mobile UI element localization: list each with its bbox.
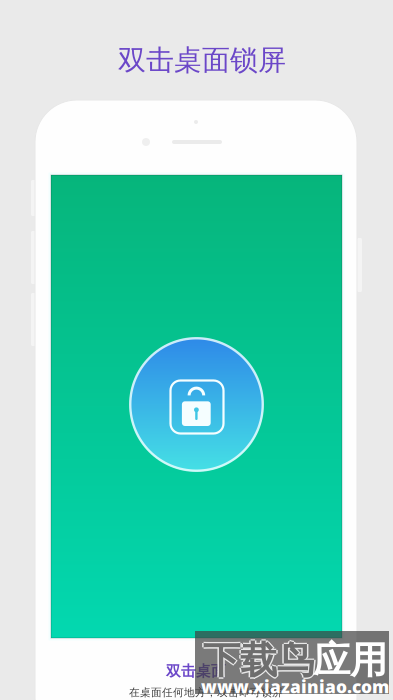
staticText: 应用 [313,637,387,683]
staticText: 下载鸟 [202,637,313,683]
staticText: www.xiazainiao.com [201,675,389,698]
staticText: 下载鸟 [203,639,314,685]
button[interactable]: Lock screen [127,335,265,473]
staticText: 下载鸟 [204,637,315,683]
staticText: 双击桌面 [166,662,226,680]
staticText: 双击桌面锁屏 [118,43,286,77]
staticText: 下载鸟 [203,637,314,683]
staticText: 下载鸟 [203,636,314,682]
staticText: 在桌面任何地方，双击即可锁屏 [129,686,283,699]
